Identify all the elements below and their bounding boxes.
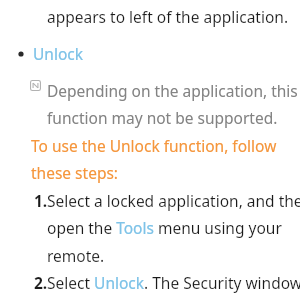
staticText: Depending on the application, this: [47, 80, 298, 101]
staticText: 2.: [34, 272, 48, 293]
staticText: these steps:: [31, 162, 118, 183]
staticText: appears to left of the application.: [47, 6, 289, 27]
staticText: Select a locked application, and then: [47, 190, 300, 211]
staticText: open the Tools menu using your: [47, 217, 282, 238]
staticText: To use the Unlock function, follow: [31, 135, 277, 156]
staticText: 1.: [34, 190, 48, 211]
staticText: function may not be supported.: [47, 107, 278, 128]
staticText: Unlock: [33, 43, 84, 64]
staticText: Select Unlock. The Security window: [47, 272, 300, 293]
staticText: remote.: [47, 245, 105, 266]
button[interactable]: Unlock: [16, 43, 84, 64]
